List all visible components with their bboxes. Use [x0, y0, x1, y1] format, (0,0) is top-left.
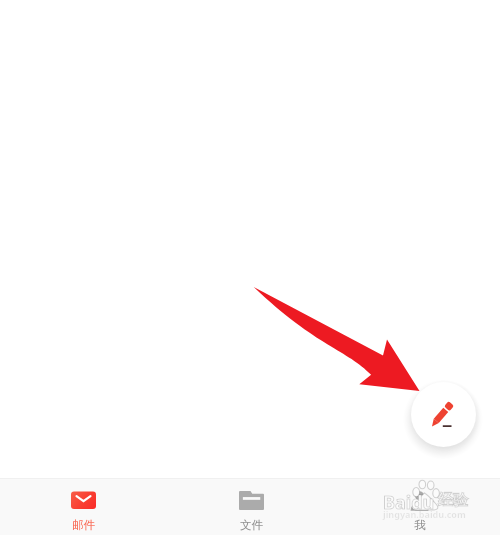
staticText: jingyan.baidu.com — [383, 508, 466, 520]
staticText: 邮件 — [72, 518, 95, 532]
staticText: Baidu — [383, 490, 435, 515]
staticText: 经验 — [438, 491, 468, 510]
staticText: 我 — [414, 518, 426, 532]
button[interactable]: 邮件 — [0, 479, 166, 535]
staticText: 文件 — [240, 518, 263, 532]
staticText: 经验 — [438, 491, 468, 510]
button[interactable]: 文件 — [166, 479, 333, 535]
button[interactable]: Compose new mail — [411, 382, 476, 447]
staticText: Baidu — [383, 490, 435, 515]
button[interactable]: 我 — [333, 479, 500, 535]
